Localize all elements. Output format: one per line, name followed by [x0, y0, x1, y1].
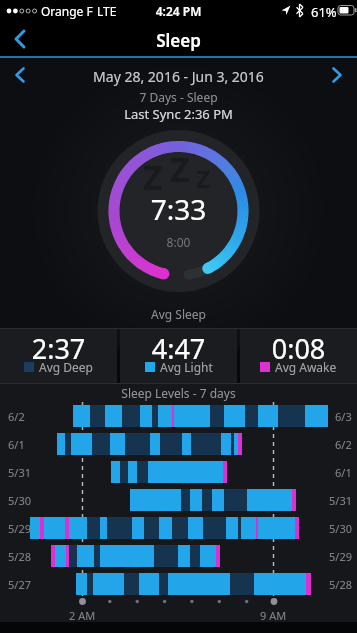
staticText: 4:24 PM — [0, 3, 357, 19]
button[interactable] — [321, 62, 353, 88]
button[interactable] — [4, 62, 36, 88]
staticText: 5/29 — [329, 549, 352, 564]
button[interactable] — [0, 22, 40, 56]
staticText: 9 AM — [260, 608, 287, 623]
staticText: 5/30 — [8, 493, 31, 508]
staticText: Avg Deep — [39, 359, 93, 375]
button[interactable]: 0:08 — [240, 329, 357, 383]
staticText: 5/31 — [329, 493, 352, 508]
staticText: 5/30 — [329, 521, 352, 536]
staticText: 7:33 — [0, 190, 357, 228]
staticText: Avg Light — [160, 359, 213, 375]
staticText: Z — [143, 154, 163, 200]
staticText: Avg Awake — [275, 359, 337, 375]
staticText: Sleep — [0, 29, 357, 52]
button[interactable]: 2:37 — [0, 329, 117, 383]
staticText: 61% — [311, 3, 337, 21]
staticText: 6/3 — [335, 409, 352, 424]
staticText: Orange F — [41, 3, 93, 19]
staticText: 6/2 — [8, 409, 25, 424]
staticText: Last Sync 2:36 PM — [0, 105, 357, 123]
staticText: 7 Days - Sleep — [0, 89, 357, 105]
button[interactable]: 4:47 — [120, 329, 237, 383]
staticText: 4:47 — [120, 330, 237, 367]
staticText: LTE — [97, 3, 117, 19]
staticText: May 28, 2016 - Jun 3, 2016 — [0, 67, 357, 86]
staticText: 5/27 — [8, 577, 31, 592]
staticText: 2 AM — [69, 608, 96, 623]
staticText: 0:08 — [240, 330, 357, 367]
staticText: Z — [170, 146, 190, 192]
staticText: 5/29 — [8, 521, 31, 536]
staticText: 6/2 — [335, 437, 352, 452]
staticText: 2:37 — [0, 330, 117, 367]
staticText: 5/28 — [329, 577, 352, 592]
staticText: Z — [196, 162, 210, 195]
staticText: 6/1 — [335, 465, 352, 480]
staticText: 5/31 — [8, 465, 31, 480]
staticText: 5/28 — [8, 549, 31, 564]
staticText: Sleep Levels - 7 days — [0, 385, 357, 401]
staticText: Avg Sleep — [0, 306, 357, 322]
staticText: 8:00 — [0, 234, 357, 250]
staticText: 6/1 — [8, 437, 25, 452]
